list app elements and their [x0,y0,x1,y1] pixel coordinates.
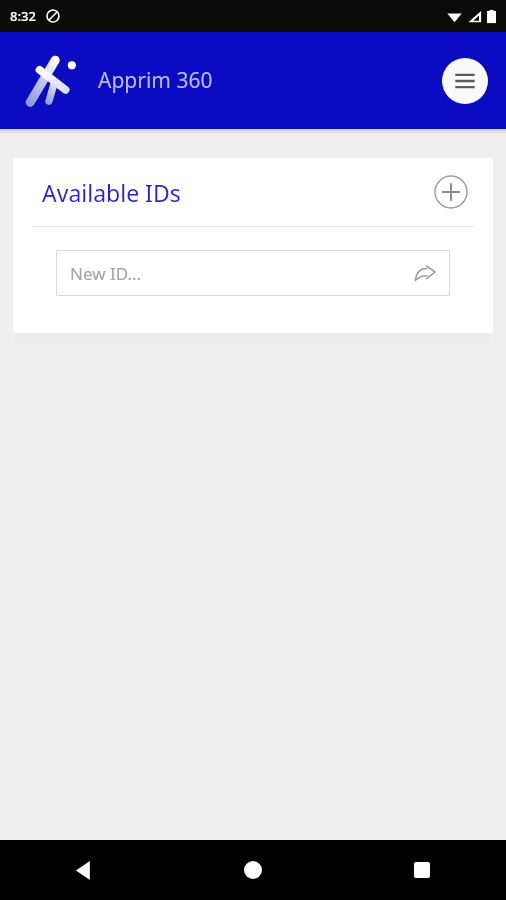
staticText: 8:32 [10,7,36,25]
button[interactable]: Submit new ID [410,258,440,288]
button[interactable]: Back [0,840,168,900]
staticText: Available IDs [42,177,181,208]
button[interactable]: Recent apps [337,840,506,900]
button[interactable]: Home [168,840,337,900]
button[interactable]: New ID... [56,250,450,296]
staticText: New ID... [70,262,142,285]
button[interactable]: Open menu [442,58,488,104]
staticText: Apprim 360 [98,66,213,95]
button[interactable]: Add new ID [431,172,471,212]
